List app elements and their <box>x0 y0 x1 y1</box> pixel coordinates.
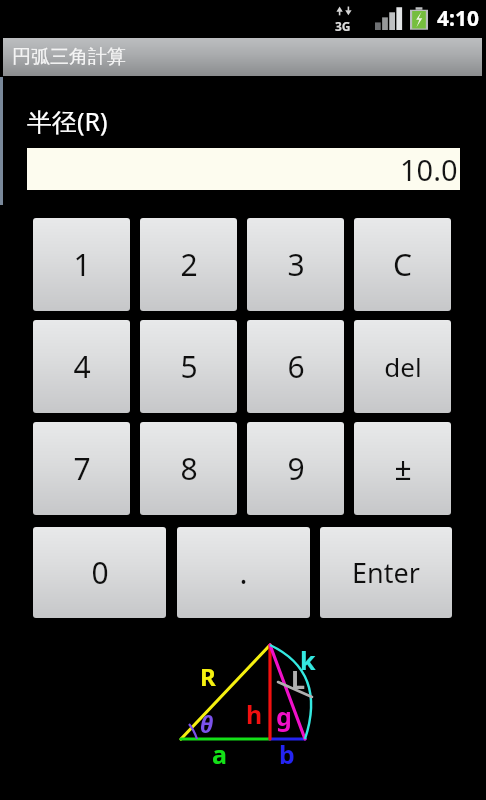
staticText: R <box>200 660 216 693</box>
staticText: . <box>239 552 248 593</box>
staticText: 10.0 <box>400 150 458 189</box>
staticText: 6 <box>287 346 305 387</box>
staticText: 3 <box>287 244 305 285</box>
staticText: 1 <box>73 244 91 285</box>
button[interactable]: 2 <box>140 218 237 311</box>
staticText: h <box>246 697 263 731</box>
button[interactable]: 4 <box>33 320 130 413</box>
staticText: 4 <box>73 346 91 387</box>
staticText: 2 <box>180 244 198 285</box>
staticText: k <box>300 643 316 677</box>
button[interactable]: 5 <box>140 320 237 413</box>
staticText: 0 <box>91 552 109 593</box>
button[interactable]: Enter <box>320 527 452 618</box>
staticText: 半径(R) <box>27 104 108 138</box>
staticText: 9 <box>287 448 305 489</box>
button[interactable]: del <box>354 320 451 413</box>
staticText: b <box>279 737 295 771</box>
button[interactable]: 7 <box>33 422 130 515</box>
staticText: 7 <box>73 448 91 489</box>
button[interactable]: 6 <box>247 320 344 413</box>
staticText: 円弧三角計算 <box>12 45 126 69</box>
button[interactable]: 1 <box>33 218 130 311</box>
staticText: 3G <box>335 18 351 34</box>
button[interactable]: 8 <box>140 422 237 515</box>
staticText: 4:10 <box>437 4 479 33</box>
staticText: C <box>393 244 412 285</box>
other: Arc triangle diagram <box>170 636 326 766</box>
button[interactable]: . <box>177 527 310 618</box>
staticText: Enter <box>352 554 420 591</box>
staticText: 8 <box>180 448 198 489</box>
button[interactable]: 10.0 <box>27 148 460 190</box>
staticText: a <box>212 737 227 771</box>
staticText: del <box>384 349 422 384</box>
staticText: ± <box>394 448 412 489</box>
staticText: L <box>291 662 305 696</box>
staticText: θ <box>200 708 214 739</box>
button[interactable]: 3 <box>247 218 344 311</box>
staticText: g <box>276 699 292 733</box>
button[interactable]: C <box>354 218 451 311</box>
button[interactable]: 9 <box>247 422 344 515</box>
staticText: 5 <box>180 346 198 387</box>
button[interactable]: ± <box>354 422 451 515</box>
button[interactable]: 0 <box>33 527 166 618</box>
